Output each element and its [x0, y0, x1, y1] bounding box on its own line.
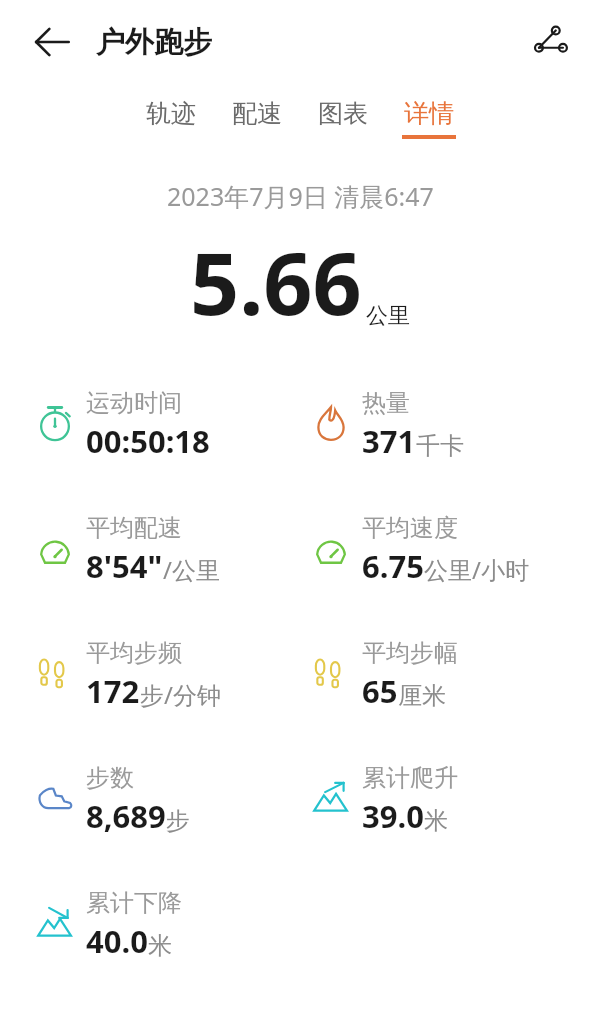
staticText: 厘米	[398, 681, 446, 711]
button[interactable]: 平均步频	[34, 634, 300, 759]
staticText: 371	[362, 420, 416, 462]
button[interactable]: 累计下降	[34, 884, 300, 1009]
button[interactable]: Share	[526, 18, 574, 66]
staticText: 8'54"	[86, 545, 163, 587]
staticText: 步	[166, 806, 190, 836]
staticText: 步数	[86, 763, 134, 793]
staticText: 图表	[318, 98, 368, 129]
staticText: 8,689	[86, 795, 166, 837]
staticText: 5.66	[190, 223, 362, 340]
staticText: 6.75	[362, 545, 424, 587]
button[interactable]: 热量	[310, 384, 600, 509]
staticText: 详情	[404, 98, 454, 129]
staticText: 累计下降	[86, 888, 182, 918]
staticText: 运动时间	[86, 388, 182, 418]
button[interactable]: 详情	[402, 98, 456, 139]
staticText: 轨迹	[146, 98, 196, 129]
button[interactable]: 步数	[34, 759, 300, 884]
staticText: 00:50:18	[86, 420, 210, 462]
staticText: 平均步频	[86, 638, 182, 668]
button[interactable]: 配速	[230, 98, 284, 139]
staticText: 平均步幅	[362, 638, 458, 668]
button[interactable]: Back	[30, 20, 74, 64]
staticText: 步/分钟	[140, 678, 221, 711]
staticText: 米	[148, 931, 172, 961]
staticText: 累计爬升	[362, 763, 458, 793]
staticText: 米	[424, 806, 448, 836]
button[interactable]: 平均配速	[34, 509, 300, 634]
button[interactable]: 平均步幅	[310, 634, 600, 759]
button[interactable]: 图表	[316, 98, 370, 139]
button[interactable]: 运动时间	[34, 384, 300, 509]
staticText: 配速	[232, 98, 282, 129]
staticText: 公里	[366, 302, 410, 330]
staticText: 2023年7月9日 清晨6:47	[167, 179, 434, 213]
staticText: /公里	[163, 553, 220, 586]
button[interactable]: 平均速度	[310, 509, 600, 634]
staticText: 172	[86, 670, 140, 712]
staticText: 平均配速	[86, 513, 182, 543]
staticText: 39.0	[362, 795, 424, 837]
staticText: 公里/小时	[424, 553, 529, 586]
staticText: 热量	[362, 388, 410, 418]
staticText: 户外跑步	[96, 24, 212, 61]
staticText: 千卡	[416, 431, 464, 461]
staticText: 40.0	[86, 920, 148, 962]
staticText: 65	[362, 670, 398, 712]
button[interactable]: 轨迹	[144, 98, 198, 139]
staticText: 平均速度	[362, 513, 458, 543]
button[interactable]: 累计爬升	[310, 759, 600, 884]
